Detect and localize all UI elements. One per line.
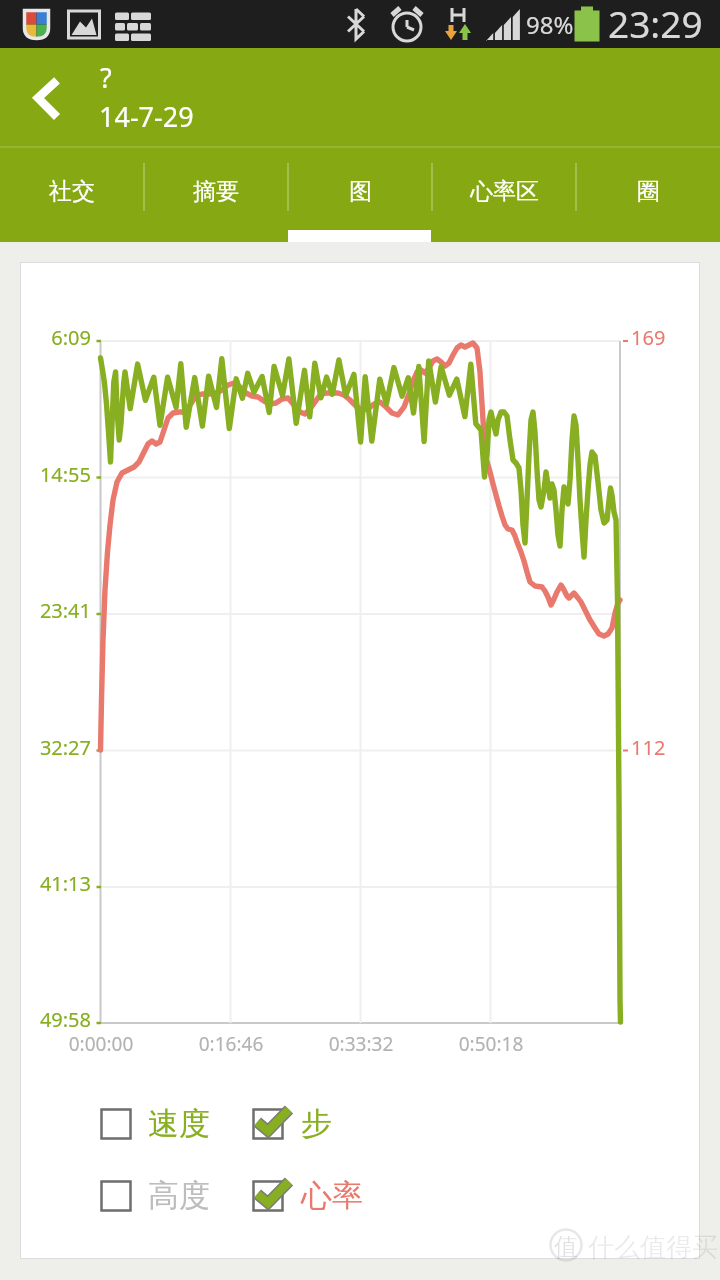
staticText: 169 (631, 324, 666, 351)
staticText: 0:00:00 (31, 1031, 171, 1057)
button[interactable]: 社交 (0, 148, 144, 242)
staticText: 32:27 (21, 734, 91, 761)
staticText: 23:29 (608, 0, 703, 46)
staticText: 14-7-29 (99, 98, 194, 135)
staticText: 圈 (637, 177, 660, 206)
staticText: 心率区 (470, 177, 539, 206)
staticText: 98% (526, 8, 574, 41)
staticText: 49:58 (21, 1006, 91, 1033)
staticText: 什么值得买 (588, 1231, 718, 1264)
staticText: 摘要 (193, 177, 239, 206)
staticText: 高度 (148, 1176, 210, 1215)
button[interactable]: Back (0, 48, 96, 148)
staticText: 心率 (301, 1176, 363, 1215)
staticText: 速度 (148, 1104, 210, 1143)
staticText: 值 (554, 1232, 578, 1262)
staticText: 图 (349, 177, 372, 206)
staticText: 14:55 (21, 461, 91, 488)
staticText: 23:41 (21, 597, 91, 624)
staticText: 0:50:18 (421, 1031, 561, 1057)
button[interactable]: 步 (246, 1102, 321, 1146)
button[interactable]: 心率区 (432, 148, 576, 242)
button[interactable]: 高度 (94, 1174, 200, 1218)
button[interactable]: 圈 (576, 148, 720, 242)
staticText: 0:33:32 (291, 1031, 431, 1057)
staticText: 步 (301, 1104, 332, 1143)
staticText: 112 (631, 734, 666, 761)
button[interactable]: 摘要 (144, 148, 288, 242)
staticText: 41:13 (21, 870, 91, 897)
button[interactable]: 心率 (246, 1174, 352, 1218)
button[interactable]: 速度 (94, 1102, 200, 1146)
staticText: 0:16:46 (161, 1031, 301, 1057)
staticText: 社交 (49, 177, 95, 206)
staticText: ? (100, 59, 112, 96)
staticText: 6:09 (21, 324, 91, 351)
button[interactable]: 图 (288, 148, 432, 242)
